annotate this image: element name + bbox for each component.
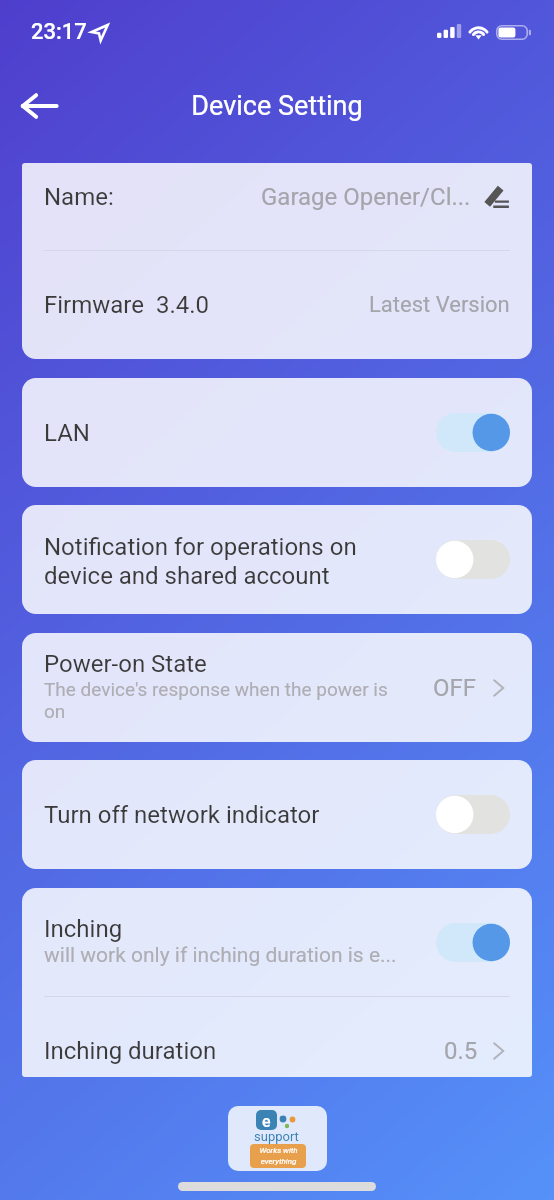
staticText: Works with everything <box>259 1146 298 1166</box>
staticText: Turn off network indicator <box>44 801 320 829</box>
staticText: will work only if inching duration is e.… <box>44 943 397 968</box>
button[interactable]: Notification for operations on device an… <box>22 505 532 614</box>
button[interactable]: Toggle, on <box>436 413 510 452</box>
staticText: Firmware 3.4.0 <box>44 291 210 319</box>
button[interactable]: eWeLink support, works with everything <box>228 1106 327 1171</box>
staticText: Power-on State <box>44 650 207 678</box>
staticText: 23:17 <box>31 19 87 45</box>
staticText: 0.5 <box>444 1037 478 1065</box>
button[interactable]: Toggle, off <box>436 540 510 579</box>
staticText: support <box>254 1129 299 1144</box>
staticText: e <box>262 1112 271 1130</box>
button[interactable]: Inching <box>22 888 532 996</box>
button[interactable]: Inching duration <box>22 997 532 1077</box>
button[interactable]: Toggle, on <box>436 923 510 962</box>
button[interactable]: LAN <box>22 378 532 487</box>
button[interactable]: Turn off network indicator <box>22 760 532 869</box>
staticText: The device's response when the power is … <box>44 678 392 723</box>
staticText: Inching <box>44 915 123 943</box>
button[interactable]: Name: <box>22 163 532 250</box>
button[interactable]: Back <box>8 75 70 137</box>
staticText: Notification for operations on device an… <box>44 533 357 590</box>
button[interactable]: Toggle, off <box>436 795 510 834</box>
staticText: Inching duration <box>44 1037 217 1065</box>
button[interactable]: Power-on State <box>22 633 532 742</box>
staticText: Name: <box>44 183 114 211</box>
staticText: Latest Version <box>369 292 510 318</box>
staticText: LAN <box>44 419 90 447</box>
staticText: Garage Opener/Cl... <box>261 183 471 211</box>
staticText: Device Setting <box>191 90 363 122</box>
button[interactable]: Edit name <box>483 183 510 210</box>
button[interactable]: Firmware 3.4.0 <box>22 251 532 359</box>
staticText: OFF <box>433 674 477 702</box>
